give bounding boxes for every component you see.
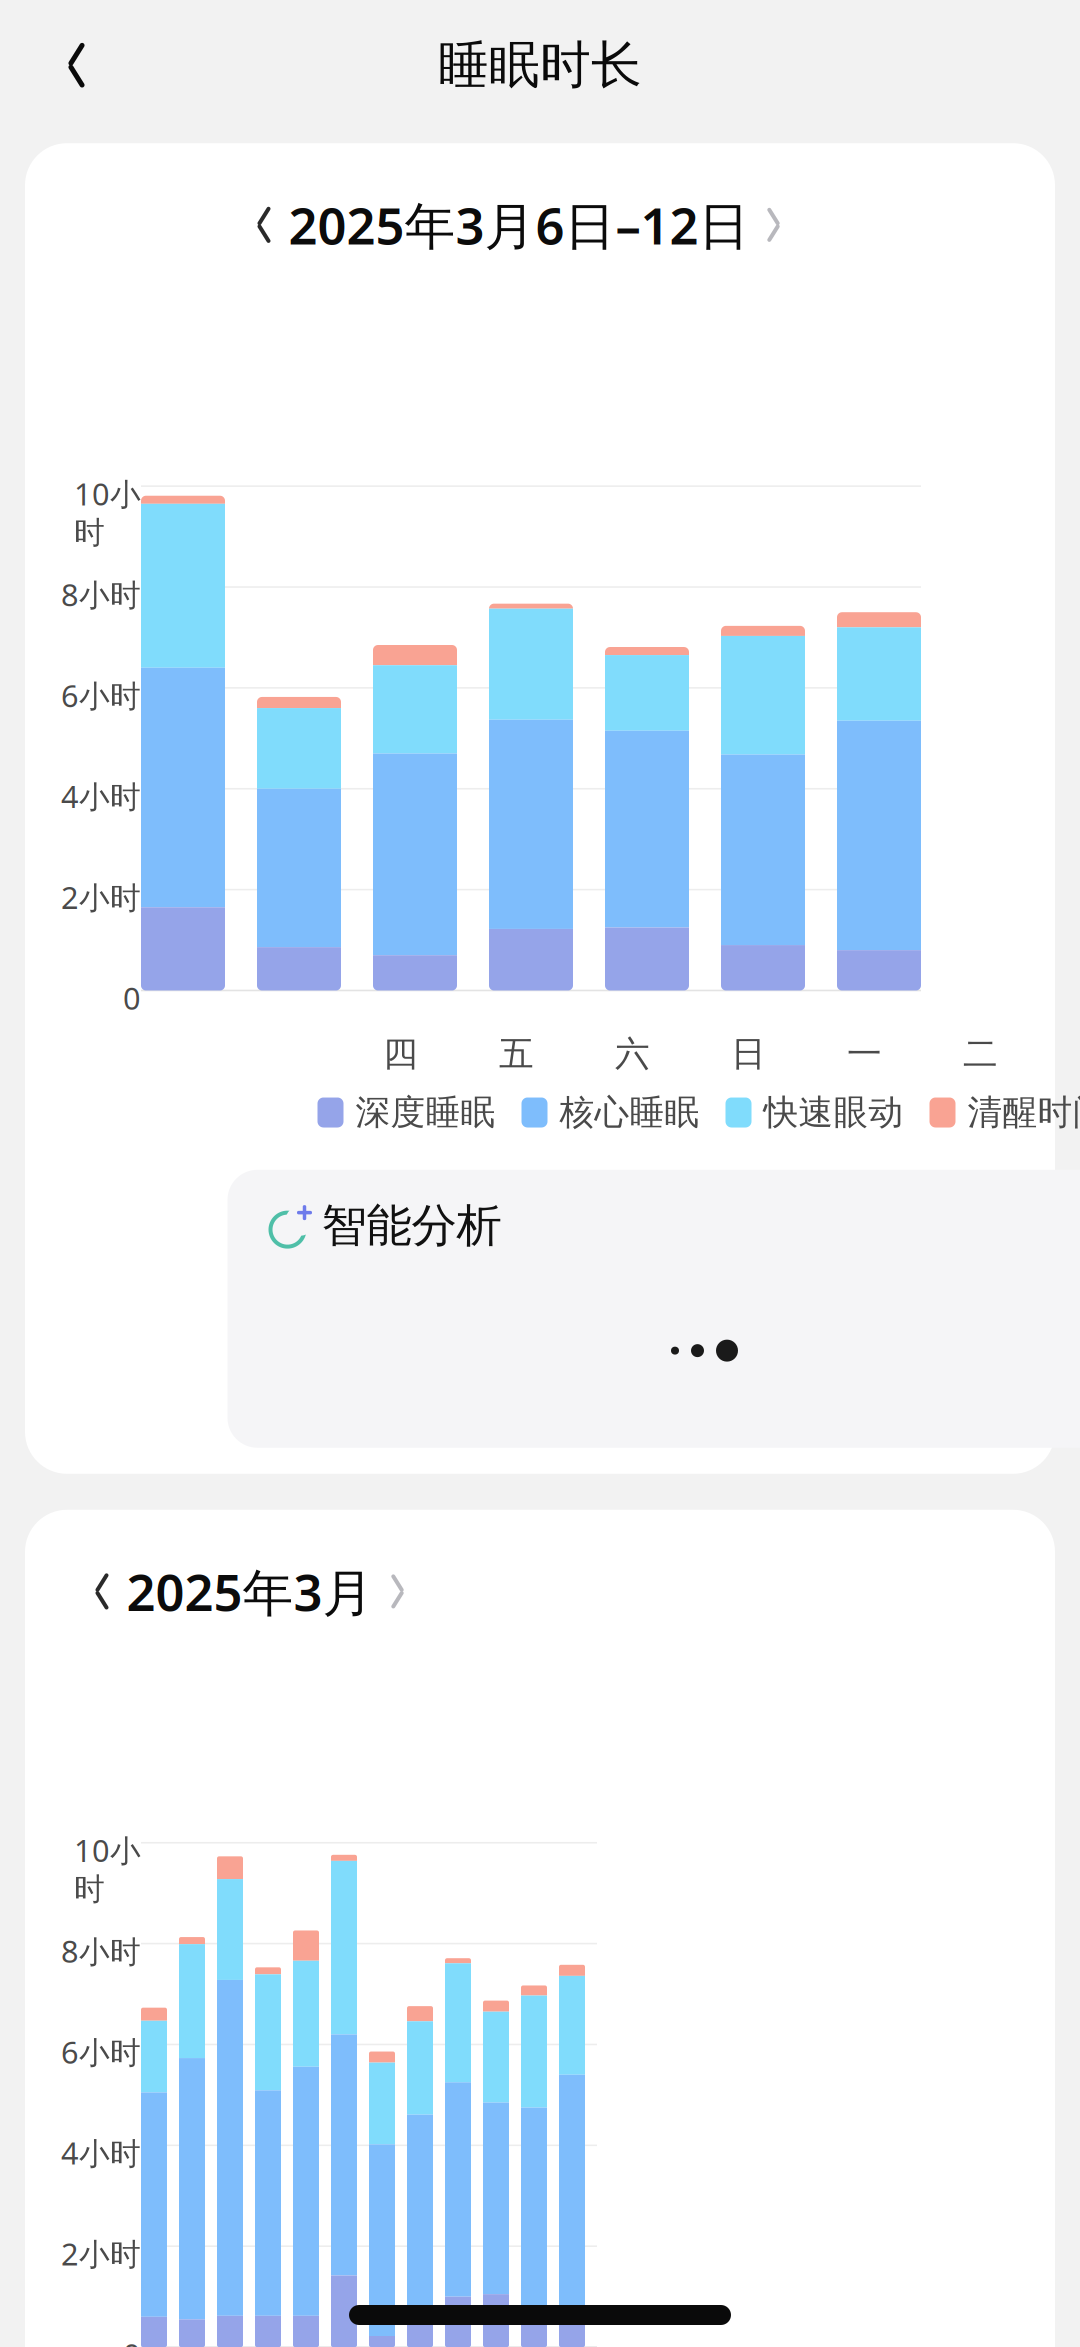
staticText: 0 [123, 2334, 141, 2347]
staticText: 六 [615, 1033, 650, 1075]
staticText: 五 [499, 1033, 534, 1075]
staticText: 6小时 [61, 675, 141, 716]
staticText: 核心睡眠 [559, 1091, 699, 1134]
staticText: 10小时 [74, 1830, 141, 1908]
staticText: 深度睡眠 [355, 1091, 495, 1134]
button[interactable]: 2025年3月6日–12日 [197, 191, 1080, 258]
staticText: 4小时 [61, 776, 141, 816]
staticText: 0 [123, 977, 141, 1018]
staticText: 4小时 [61, 2132, 141, 2173]
staticText: 2025年3月 [126, 1558, 373, 1625]
staticText: 快速眼动 [763, 1091, 903, 1134]
staticText: 8小时 [61, 1931, 141, 1971]
staticText: 清醒时间 [967, 1091, 1080, 1134]
staticText: 日 [731, 1033, 766, 1075]
staticText: 2小时 [61, 2233, 141, 2274]
staticText: 10小时 [74, 473, 141, 551]
staticText: 四 [383, 1033, 418, 1075]
button[interactable]: 返回 [44, 30, 109, 100]
staticText: 2025年3月6日–12日 [288, 191, 749, 258]
staticText: 二 [963, 1033, 998, 1075]
button[interactable]: 智能分析 [227, 1170, 1080, 1448]
staticText: 一 [847, 1033, 882, 1075]
staticText: 8小时 [61, 574, 141, 615]
staticText: 智能分析 [321, 1198, 501, 1253]
button[interactable]: 2025年3月 [35, 1558, 1065, 1625]
staticText: 睡眠时长 [438, 34, 642, 96]
staticText: 2小时 [61, 877, 141, 917]
staticText: 6小时 [61, 2031, 141, 2072]
